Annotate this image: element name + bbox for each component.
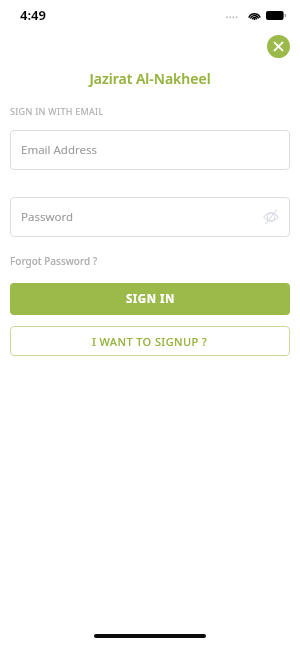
button[interactable]: Password xyxy=(10,197,290,237)
button[interactable]: Close xyxy=(267,35,290,58)
button[interactable]: I WANT TO SIGNUP ? xyxy=(10,326,290,356)
staticText: Jazirat Al-Nakheel xyxy=(0,69,300,88)
button[interactable]: SIGN IN xyxy=(10,283,290,315)
staticText: Email Address xyxy=(21,142,98,158)
staticText: SIGN IN WITH EMAIL xyxy=(10,105,104,117)
button[interactable]: Email Address xyxy=(10,130,290,170)
button[interactable]: Show password xyxy=(262,208,280,226)
button[interactable]: Forgot Password ? xyxy=(10,254,98,268)
staticText: Password xyxy=(21,209,74,225)
staticText: 4:49 xyxy=(20,6,46,24)
staticText: Forgot Password ? xyxy=(10,254,98,268)
staticText: SIGN IN xyxy=(126,291,175,307)
staticText: I WANT TO SIGNUP ? xyxy=(92,334,208,349)
